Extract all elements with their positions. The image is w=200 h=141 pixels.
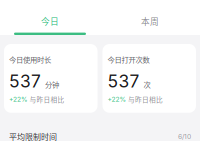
staticText: 平均限制时间 xyxy=(9,131,57,141)
staticText: 与昨日相比 xyxy=(29,95,64,104)
staticText: 分钟 xyxy=(45,79,59,89)
staticText: 今日打开次数 xyxy=(107,54,149,65)
staticText: 次 xyxy=(143,79,150,89)
staticText: 6/10 xyxy=(178,132,191,141)
staticText: 与昨日相比 xyxy=(128,95,163,104)
staticText: 537 xyxy=(107,71,139,92)
staticText: +22% xyxy=(107,95,126,103)
button[interactable]: 本周 xyxy=(100,0,200,35)
button[interactable]: 今日打开次数 xyxy=(102,44,196,113)
staticText: +22% xyxy=(9,95,28,103)
button[interactable]: 今日 xyxy=(0,0,100,35)
staticText: 今日 xyxy=(41,15,59,28)
staticText: 今日使用时长 xyxy=(9,54,51,65)
staticText: 537 xyxy=(9,71,41,92)
button[interactable]: 今日使用时长 xyxy=(4,44,97,113)
staticText: 本周 xyxy=(141,15,159,28)
